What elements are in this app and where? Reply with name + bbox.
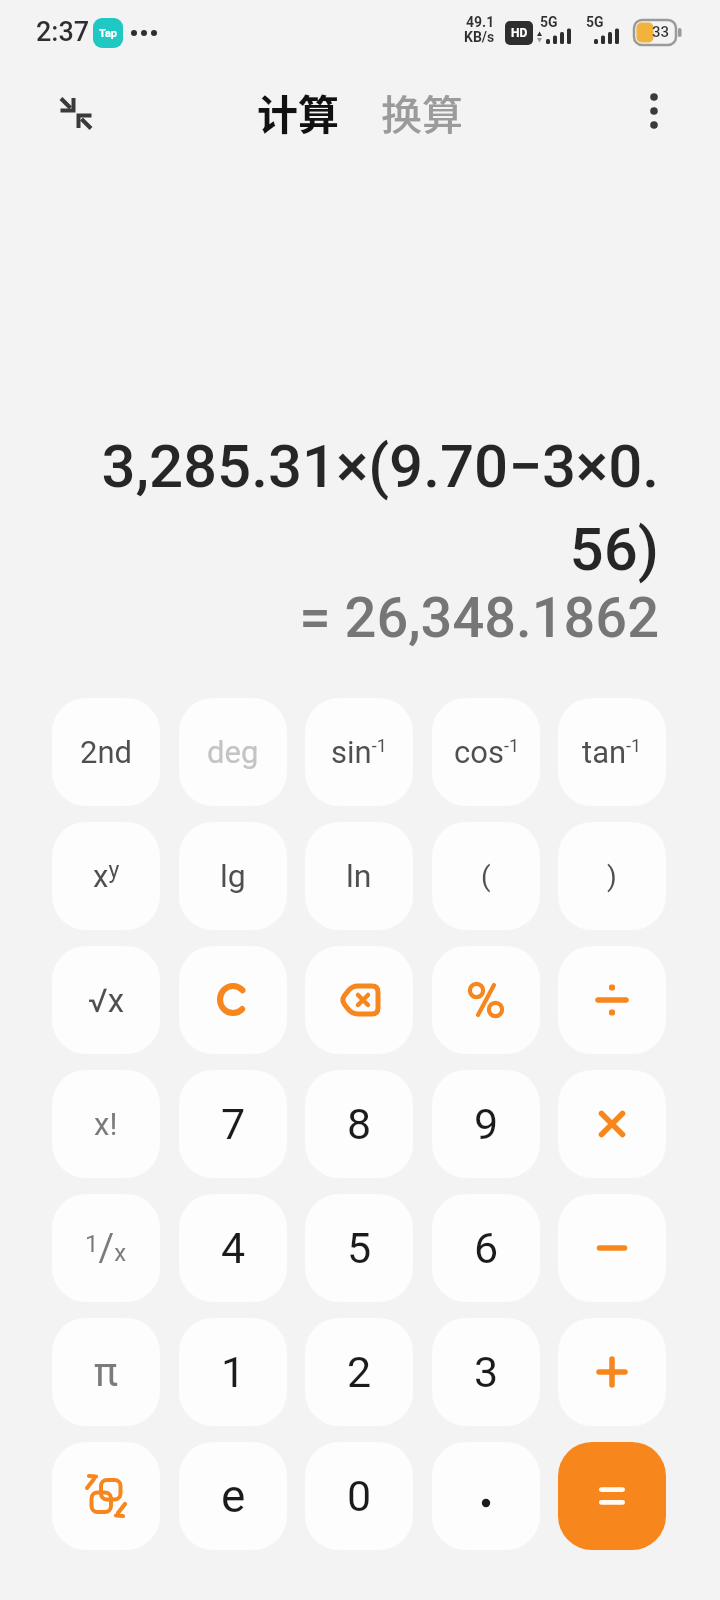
staticText: e (221, 1469, 246, 1523)
button[interactable] (48, 85, 104, 141)
button[interactable]: 3 (432, 1318, 540, 1426)
staticText: ) (607, 860, 617, 893)
staticText: x! (94, 1106, 118, 1142)
button[interactable] (432, 946, 540, 1054)
staticText: cos-1 (454, 734, 519, 770)
staticText: ( (481, 860, 491, 893)
staticText: tan-1 (582, 734, 642, 770)
button[interactable]: 2 (305, 1318, 413, 1426)
staticText: π (94, 1349, 118, 1396)
staticText: 9 (474, 1099, 499, 1149)
button[interactable]: 0 (305, 1442, 413, 1550)
staticText: 6 (474, 1223, 499, 1273)
staticText: 计算 (257, 82, 339, 141)
staticText: √x (88, 981, 125, 1020)
button[interactable] (558, 1318, 666, 1426)
button[interactable]: 9 (432, 1070, 540, 1178)
button[interactable]: π (52, 1318, 160, 1426)
button[interactable]: 换算 (381, 82, 463, 141)
staticText: sin-1 (331, 734, 387, 770)
staticText: Tap (99, 27, 117, 40)
button[interactable]: sin-1 (305, 698, 413, 806)
button[interactable] (558, 1194, 666, 1302)
staticText: 2 (347, 1347, 372, 1397)
button[interactable] (179, 946, 287, 1054)
button[interactable]: 2nd (52, 698, 160, 806)
staticText: 2nd (80, 734, 133, 770)
button[interactable]: ln (305, 822, 413, 930)
staticText: KB/s (464, 29, 495, 45)
button[interactable]: cos-1 (432, 698, 540, 806)
button[interactable]: e (179, 1442, 287, 1550)
button[interactable]: tan-1 (558, 698, 666, 806)
button[interactable]: 计算 (257, 82, 339, 141)
staticText: 换算 (381, 82, 463, 141)
button[interactable] (558, 1442, 666, 1550)
staticText: 5G (540, 14, 558, 30)
staticText: 2:37 (36, 16, 90, 48)
button[interactable] (558, 1070, 666, 1178)
button[interactable]: x! (52, 1070, 160, 1178)
staticText: = 26,348.1862 (299, 585, 659, 651)
button[interactable] (628, 85, 680, 137)
staticText: 8 (347, 1099, 372, 1149)
staticText: 49.1 (466, 14, 495, 30)
button[interactable]: 4 (179, 1194, 287, 1302)
staticText: 7 (221, 1099, 246, 1149)
button[interactable]: 8 (305, 1070, 413, 1178)
button[interactable]: 1/x (52, 1194, 160, 1302)
button[interactable]: 5 (305, 1194, 413, 1302)
button[interactable]: √x (52, 946, 160, 1054)
staticText: deg (207, 734, 259, 770)
staticText: 0 (347, 1471, 372, 1521)
button[interactable]: 7 (179, 1070, 287, 1178)
staticText: 5G (586, 14, 604, 30)
staticText: 3 (474, 1347, 499, 1397)
staticText: 3,285.31×(9.70−3×0. 56) (101, 431, 659, 584)
staticText: 1 (221, 1347, 246, 1397)
button[interactable]: lg (179, 822, 287, 930)
button[interactable]: ) (558, 822, 666, 930)
staticText: lg (220, 857, 246, 895)
staticText: 5 (347, 1223, 372, 1273)
staticText: 1/x (85, 1226, 127, 1271)
button[interactable]: deg (179, 698, 287, 806)
button[interactable] (558, 946, 666, 1054)
staticText: xy (93, 857, 120, 895)
staticText: ln (346, 857, 372, 895)
staticText: 33 (652, 23, 670, 41)
button[interactable]: 6 (432, 1194, 540, 1302)
staticText: 4 (221, 1223, 246, 1273)
staticText: HD (511, 26, 528, 40)
button[interactable] (432, 1442, 540, 1550)
button[interactable] (52, 1442, 160, 1550)
button[interactable] (305, 946, 413, 1054)
button[interactable]: ( (432, 822, 540, 930)
button[interactable]: xy (52, 822, 160, 930)
button[interactable]: 1 (179, 1318, 287, 1426)
